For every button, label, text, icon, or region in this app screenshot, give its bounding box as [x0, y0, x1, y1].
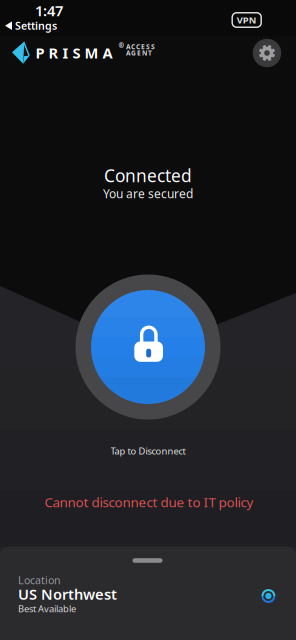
staticText: Location — [18, 573, 61, 587]
staticText: You are secured — [103, 185, 193, 201]
button[interactable]: Back to Settings — [5, 19, 85, 33]
staticText: PRISMA — [35, 43, 112, 63]
button[interactable]: Tap to Disconnect — [75, 274, 220, 419]
button[interactable]: Location — [0, 547, 296, 640]
staticText: Cannot disconnect due to IT policy — [44, 493, 253, 511]
staticText: US Northwest — [18, 584, 117, 604]
staticText: Tap to Disconnect — [110, 445, 185, 457]
button[interactable]: Settings — [253, 39, 281, 67]
staticText: ACCESS — [126, 42, 155, 51]
staticText: ® — [118, 41, 124, 50]
staticText: AGENT — [126, 48, 152, 57]
staticText: Connected — [104, 164, 192, 187]
staticText: VPN — [237, 14, 257, 26]
staticText: 1:47 — [35, 1, 63, 20]
staticText: Settings — [15, 19, 57, 33]
staticText: Best Available — [18, 602, 76, 615]
